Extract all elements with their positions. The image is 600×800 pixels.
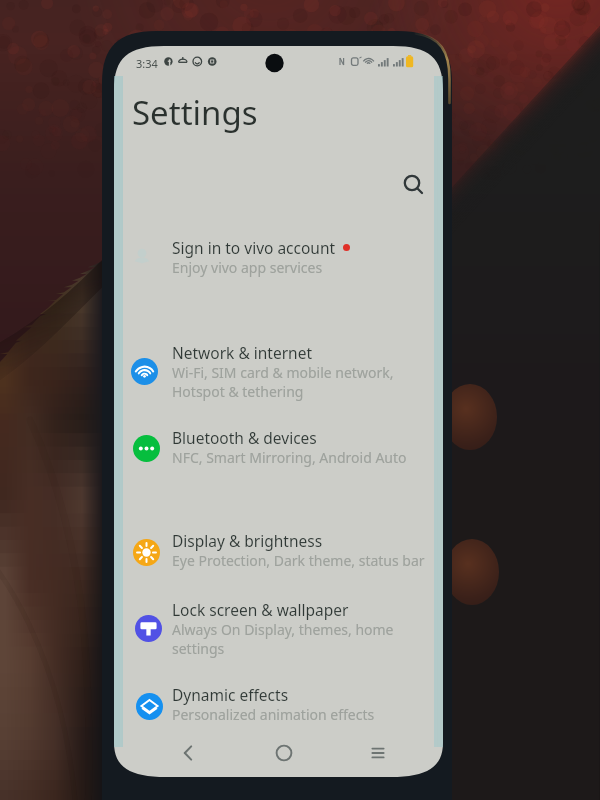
staticText: Lock screen & wallpaper	[172, 599, 349, 620]
staticText: Settings	[132, 90, 258, 135]
button[interactable]: Home	[268, 737, 300, 769]
staticText: Eye Protection, Dark theme, status bar	[172, 551, 425, 570]
staticText: Bluetooth & devices	[172, 427, 317, 448]
staticText: 3:34	[136, 56, 158, 71]
button[interactable]: Dynamic effects	[114, 674, 443, 723]
button[interactable]: Lock screen & wallpaper	[114, 589, 443, 656]
staticText: Wi-Fi, SIM card & mobile network, Hotspo…	[172, 363, 394, 401]
staticText: Personalized animation effects	[172, 705, 375, 724]
button[interactable]: Search	[392, 163, 432, 203]
button[interactable]: Recent apps	[362, 737, 394, 769]
staticText: Sign in to vivo account	[172, 237, 336, 258]
button[interactable]: Display & brightness	[114, 520, 443, 569]
button[interactable]: Sign in to vivo account	[114, 227, 443, 276]
button[interactable]: Network & internet	[114, 332, 443, 399]
staticText: Display & brightness	[172, 530, 323, 551]
staticText: Enjoy vivo app services	[172, 258, 323, 277]
button[interactable]: Bluetooth & devices	[114, 417, 443, 466]
staticText: Dynamic effects	[172, 684, 289, 705]
button[interactable]: Back	[172, 737, 204, 769]
staticText: Network & internet	[172, 342, 312, 363]
staticText: Always On Display, themes, home settings	[172, 620, 394, 658]
staticText: NFC, Smart Mirroring, Android Auto	[172, 448, 407, 467]
